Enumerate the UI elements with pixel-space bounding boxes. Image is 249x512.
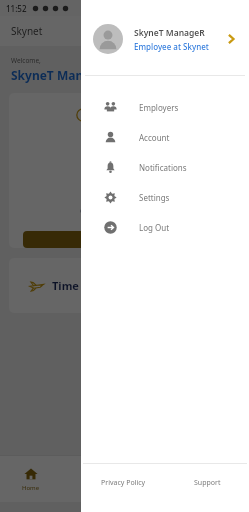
button[interactable]: Log Out <box>81 212 249 242</box>
staticText: 11:52 <box>6 3 27 14</box>
staticText: Change Cost Center <box>80 204 169 216</box>
staticText: SkyneT ManageR <box>11 67 114 83</box>
staticText: Home <box>22 484 40 492</box>
staticText: Employers <box>139 102 179 113</box>
staticText: Support <box>194 478 221 488</box>
staticText: Log Out <box>139 222 170 233</box>
button[interactable]: Account <box>81 122 249 152</box>
staticText: Account <box>139 132 170 143</box>
button[interactable]: Privacy Policy <box>81 464 165 502</box>
staticText: Time Off <box>52 278 99 293</box>
button[interactable]: Notifications <box>81 152 249 182</box>
staticText: Employee at Skynet <box>134 41 209 52</box>
staticText: Time Tracking <box>96 107 173 122</box>
button[interactable]: Support <box>165 464 249 502</box>
button[interactable] <box>23 231 226 248</box>
staticText: Settings <box>139 192 170 203</box>
button[interactable]: SkyneT ManageR <box>81 14 249 64</box>
staticText: Skynet <box>11 24 43 38</box>
button[interactable]: Home <box>0 456 62 502</box>
staticText: Projects <box>111 172 138 182</box>
staticText: SkyneT ManageR <box>134 27 205 39</box>
staticText: Privacy Policy <box>101 478 146 488</box>
staticText: Welcome, <box>11 56 41 65</box>
staticText: Notifications <box>139 162 187 173</box>
button[interactable]: Open profile <box>221 29 241 49</box>
staticText: 11 <box>111 136 139 169</box>
button[interactable]: Settings <box>81 182 249 212</box>
button[interactable]: Employers <box>81 92 249 122</box>
